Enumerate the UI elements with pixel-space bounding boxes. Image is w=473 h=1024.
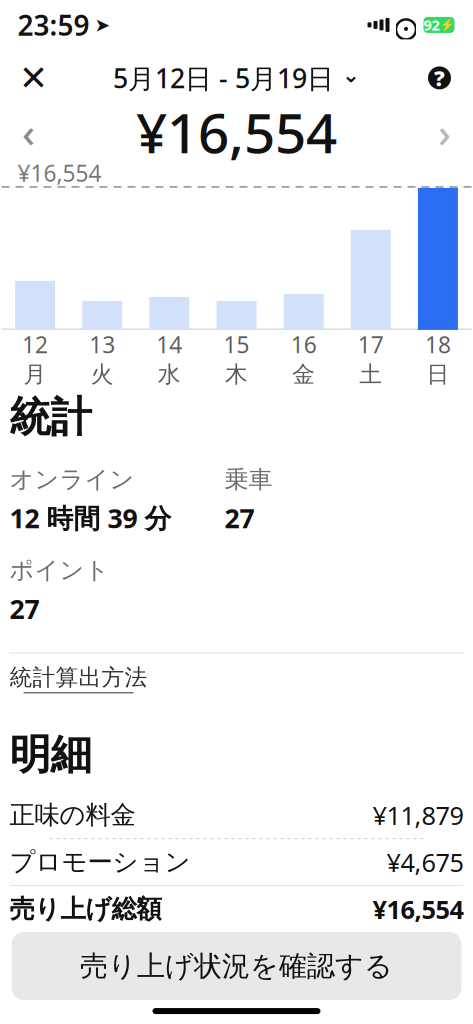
staticText: 14 (156, 329, 182, 359)
staticText: 売り上げ総額 (9, 893, 161, 925)
staticText: 売り上げ状況を確認する (80, 949, 393, 983)
staticText: ¥16,554 (17, 158, 101, 188)
button[interactable]: 5月12日 - 5月19日 (113, 54, 360, 102)
button[interactable]: ヘルプ (415, 54, 463, 102)
staticText: 5月12日 - 5月19日 (113, 60, 334, 96)
staticText: ¥11,879 (372, 798, 463, 832)
button[interactable]: 前の週 (5, 106, 51, 158)
staticText: 水 (158, 360, 181, 388)
staticText: 正味の料金 (9, 799, 135, 831)
staticText: 明細 (9, 729, 91, 780)
staticText: 17 (358, 329, 384, 359)
staticText: ⌄ (342, 63, 360, 87)
button[interactable]: 閉じる (9, 54, 57, 102)
staticText: オンライン (9, 465, 134, 494)
staticText: 27 (224, 500, 254, 536)
staticText: ¥16,554 (372, 892, 463, 926)
staticText: ⚡ (439, 18, 454, 32)
staticText: ➤ (94, 14, 110, 35)
staticText: ✕ (19, 58, 48, 97)
staticText: 92 (423, 15, 439, 35)
staticText: ¥4,675 (386, 845, 463, 879)
staticText: 16 (291, 329, 317, 359)
button[interactable]: 次の週 (421, 106, 467, 158)
staticText: ‹ (22, 105, 35, 158)
staticText: 13 (89, 329, 115, 359)
staticText: ポイント (9, 556, 109, 585)
staticText: 統計 (9, 392, 91, 443)
staticText: › (438, 105, 451, 158)
staticText: 15 (223, 329, 249, 359)
staticText: 27 (9, 591, 39, 626)
staticText: 23:59 (17, 6, 89, 43)
staticText: 月 (24, 360, 47, 388)
staticText: 金 (292, 360, 315, 388)
staticText: 土 (359, 360, 382, 388)
staticText: ? (434, 64, 445, 92)
staticText: 12 (22, 329, 48, 359)
staticText: プロモーション (9, 846, 190, 878)
staticText: 木 (225, 360, 248, 388)
staticText: 統計算出方法 (9, 663, 147, 691)
button[interactable]: 売り上げ状況を確認する (11, 932, 461, 1000)
staticText: 12 時間 39 分 (9, 500, 171, 536)
staticText: 火 (91, 360, 114, 388)
staticText: 18 (425, 329, 451, 359)
button[interactable]: 統計算出方法 (9, 653, 463, 703)
staticText: 日 (426, 360, 449, 388)
staticText: ¥16,554 (136, 96, 337, 168)
staticText: 乗車 (224, 465, 272, 494)
